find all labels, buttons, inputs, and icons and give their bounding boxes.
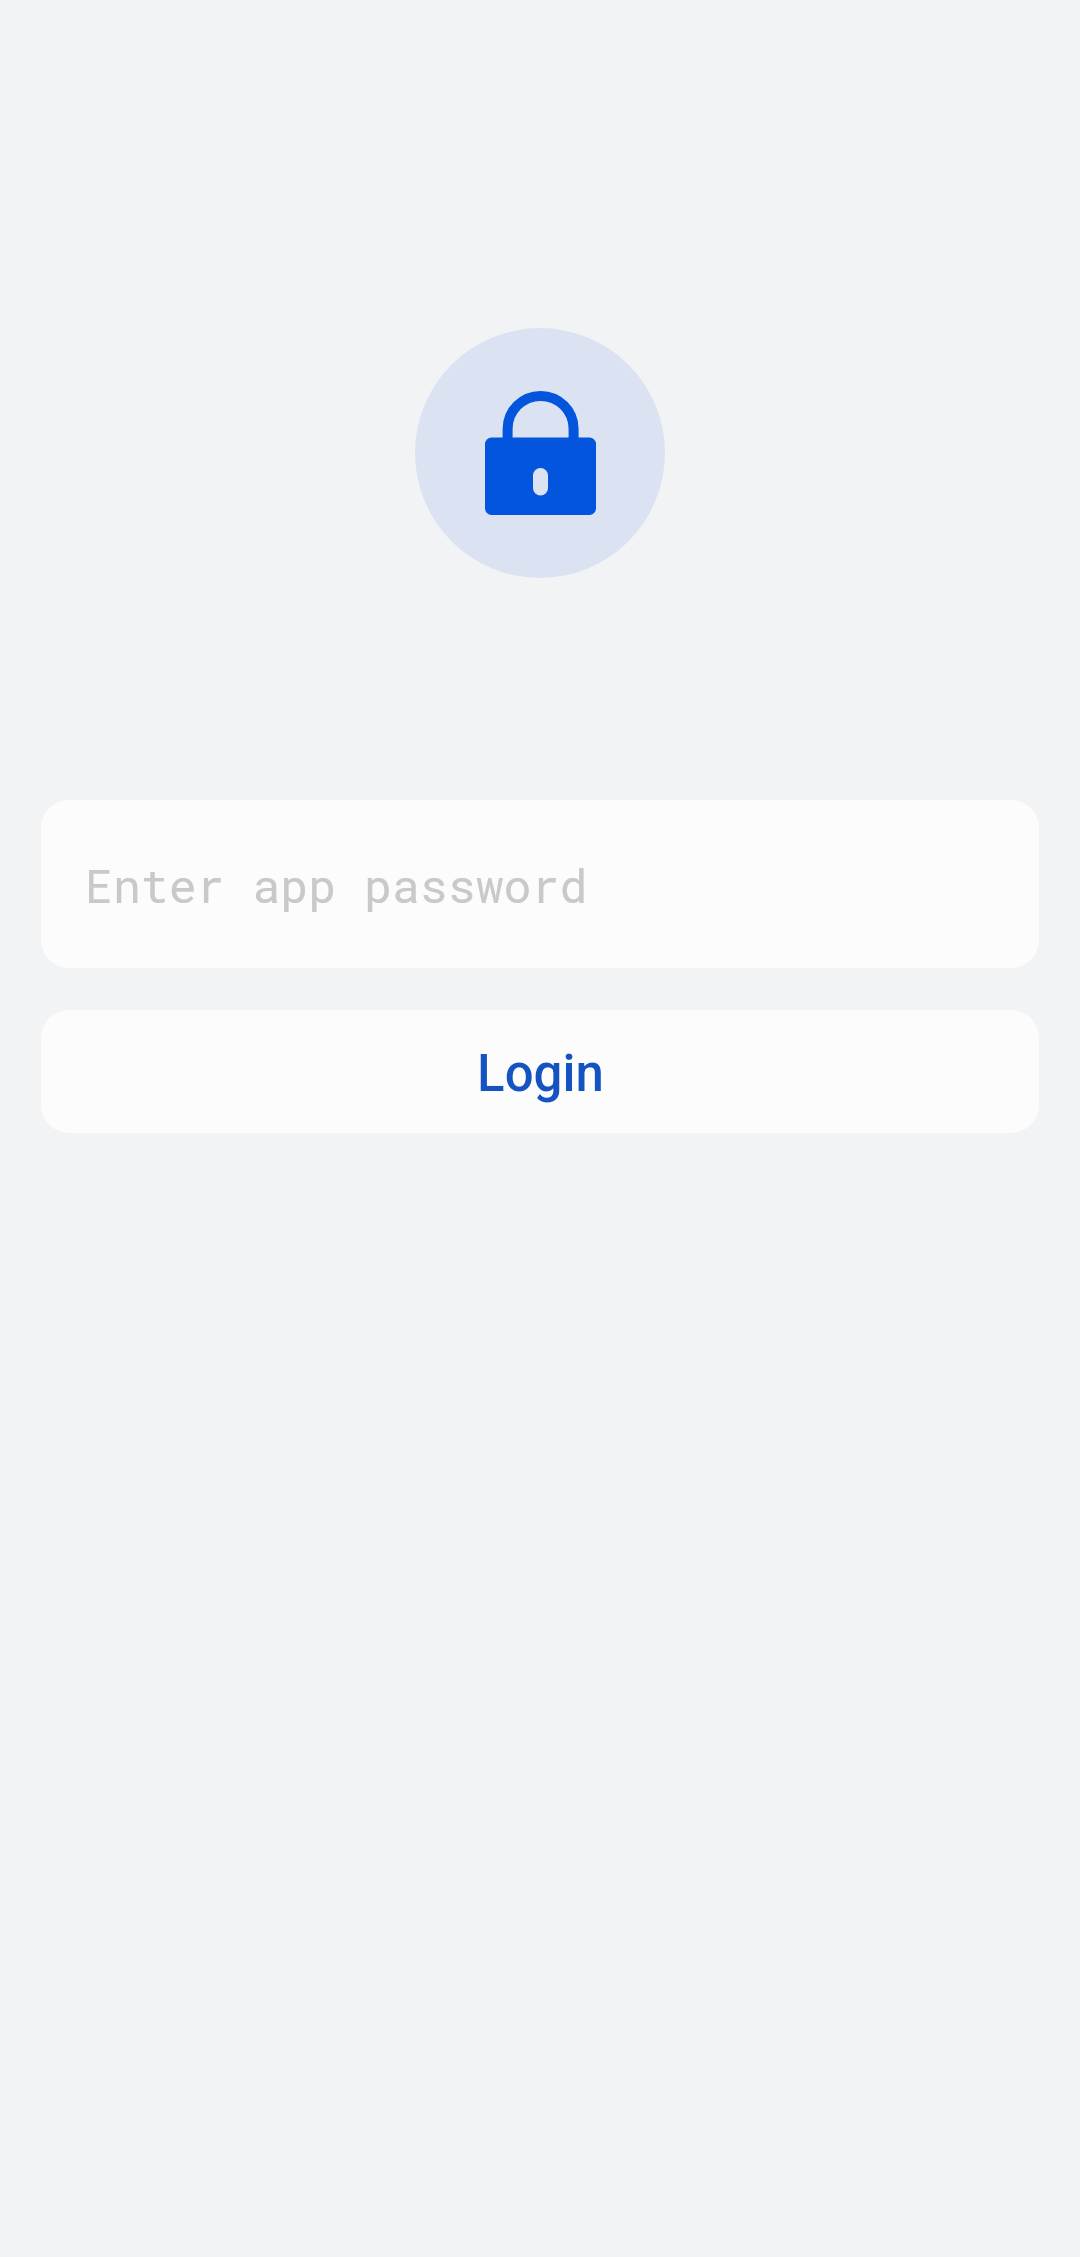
other: App locked: [475, 388, 605, 518]
staticText: Enter app password: [85, 854, 588, 915]
button[interactable]: Enter app password: [41, 800, 1039, 968]
button[interactable]: Login: [41, 1010, 1039, 1133]
staticText: Login: [477, 1044, 604, 1104]
